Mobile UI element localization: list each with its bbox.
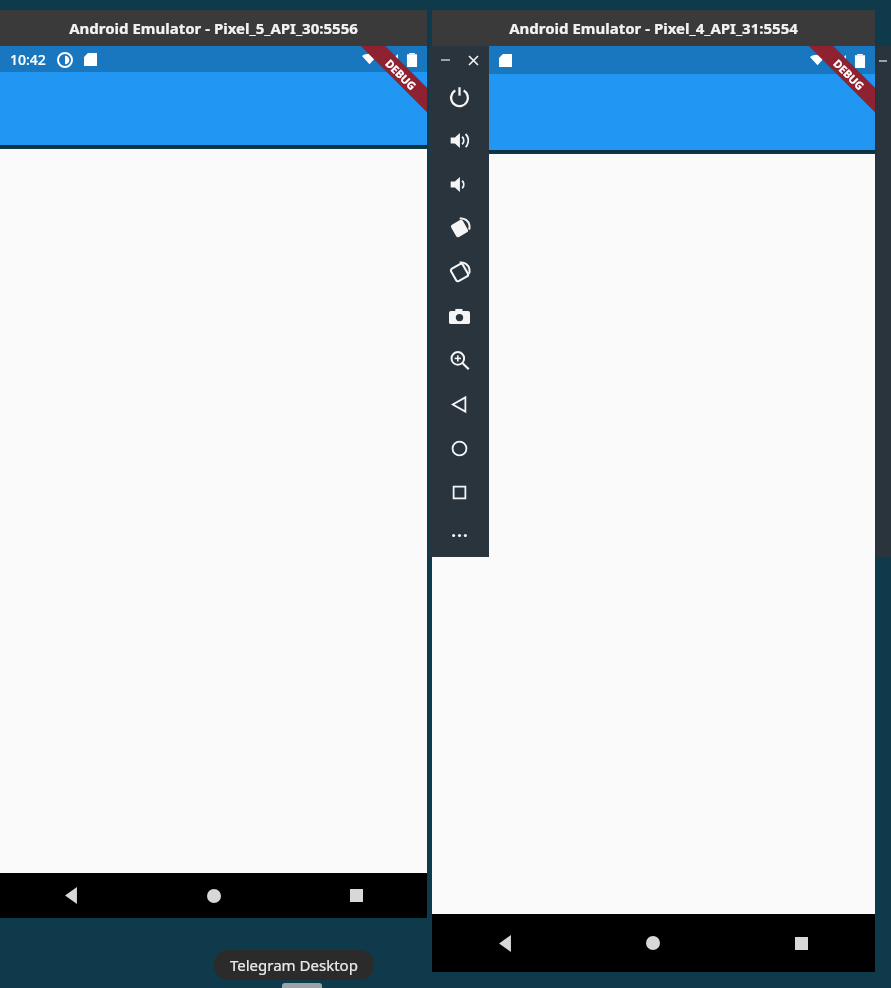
button[interactable]: Zoom [429,338,489,382]
staticText: Android Emulator - Pixel_4_API_31:5554 [509,18,798,38]
button[interactable]: Power [429,74,489,118]
button[interactable]: Rotate right [429,250,489,294]
button[interactable]: Back [432,914,579,972]
button[interactable]: More [429,514,489,557]
button[interactable]: Minimize [435,50,455,70]
staticText: 10:42 [10,50,46,69]
staticText: Telegram Desktop [230,955,358,975]
button[interactable]: Close [463,50,483,70]
button[interactable]: Recents [727,914,875,972]
button[interactable]: Back [0,873,143,918]
button[interactable]: Recents [285,873,427,918]
button[interactable]: Android Emulator - Pixel_5_API_30:5556 [0,10,427,46]
staticText: Android Emulator - Pixel_5_API_30:5556 [69,18,358,38]
button[interactable]: Volume down [429,162,489,206]
button[interactable]: Telegram Desktop [214,950,374,980]
staticText: DEBUG [830,56,868,93]
button[interactable]: Back [429,382,489,426]
button[interactable]: Android Emulator - Pixel_4_API_31:5554 [432,10,875,46]
staticText: DEBUG [382,56,420,93]
button[interactable]: Rotate left [429,206,489,250]
button[interactable]: Overview [429,470,489,514]
button[interactable]: Home [579,914,727,972]
button[interactable]: Home [429,426,489,470]
button[interactable]: Take screenshot [429,294,489,338]
button[interactable]: Volume up [429,118,489,162]
button[interactable]: Home [143,873,285,918]
